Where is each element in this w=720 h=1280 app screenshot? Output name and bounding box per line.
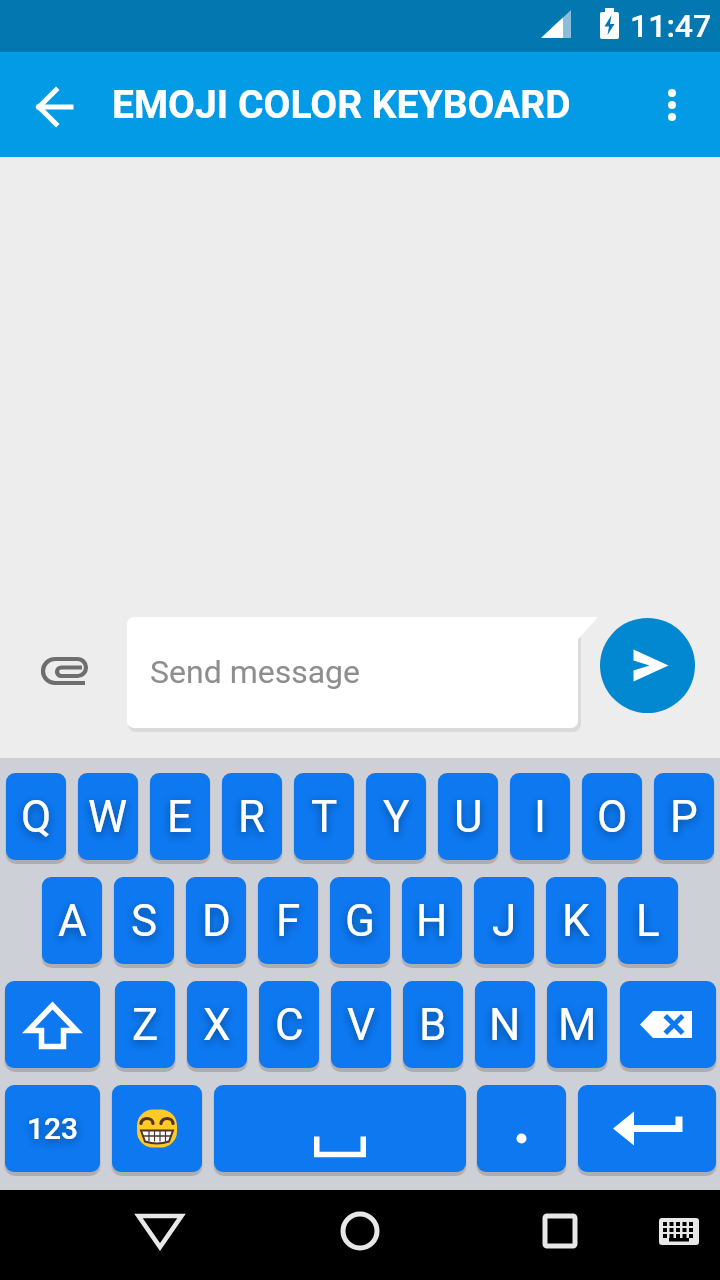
staticText: M xyxy=(558,999,597,1051)
button[interactable] xyxy=(600,618,695,713)
staticText: E xyxy=(167,791,193,843)
staticText: T xyxy=(311,791,338,843)
button[interactable]: D xyxy=(186,877,246,964)
button[interactable]: O xyxy=(582,773,642,860)
staticText: 11:47 xyxy=(630,7,712,45)
button[interactable]: R xyxy=(222,773,282,860)
button[interactable] xyxy=(477,1085,566,1172)
button[interactable] xyxy=(578,1085,716,1172)
button[interactable]: Send message xyxy=(127,616,580,728)
button[interactable]: S xyxy=(114,877,174,964)
button[interactable]: 123 xyxy=(5,1085,100,1172)
button[interactable]: U xyxy=(438,773,498,860)
staticText: 123 xyxy=(27,1111,79,1146)
button[interactable]: C xyxy=(259,981,319,1068)
button[interactable] xyxy=(5,981,100,1068)
button[interactable] xyxy=(112,1085,202,1172)
staticText: R xyxy=(238,791,266,843)
staticText: Q xyxy=(21,791,52,843)
button[interactable]: L xyxy=(618,877,678,964)
staticText: F xyxy=(276,895,301,947)
staticText: L xyxy=(636,895,660,947)
button[interactable] xyxy=(328,1203,392,1267)
staticText: J xyxy=(492,895,517,947)
button[interactable] xyxy=(650,1203,708,1261)
button[interactable] xyxy=(23,75,87,139)
button[interactable]: Y xyxy=(366,773,426,860)
button[interactable]: Q xyxy=(6,773,66,860)
staticText: Z xyxy=(132,999,159,1051)
staticText: Y xyxy=(383,791,410,843)
staticText: N xyxy=(489,999,521,1051)
button[interactable]: N xyxy=(475,981,535,1068)
button[interactable]: F xyxy=(258,877,318,964)
button[interactable]: W xyxy=(78,773,138,860)
button[interactable] xyxy=(528,1203,592,1267)
button[interactable]: X xyxy=(187,981,247,1068)
button[interactable]: E xyxy=(150,773,210,860)
button[interactable]: B xyxy=(403,981,463,1068)
staticText: X xyxy=(203,999,231,1051)
staticText: V xyxy=(347,999,376,1051)
button[interactable] xyxy=(648,81,696,129)
staticText: I xyxy=(534,791,546,843)
button[interactable]: V xyxy=(331,981,391,1068)
button[interactable]: G xyxy=(330,877,390,964)
staticText: O xyxy=(597,791,628,843)
button[interactable] xyxy=(33,641,93,701)
staticText: P xyxy=(670,791,698,843)
staticText: A xyxy=(58,895,87,947)
button[interactable]: J xyxy=(474,877,534,964)
staticText: G xyxy=(345,895,375,947)
staticText: C xyxy=(275,999,304,1051)
staticText: K xyxy=(562,895,590,947)
staticText: Send message xyxy=(150,653,361,691)
button[interactable]: A xyxy=(42,877,102,964)
staticText: EMOJI COLOR KEYBOARD xyxy=(112,82,571,128)
button[interactable] xyxy=(620,981,716,1068)
button[interactable] xyxy=(128,1203,192,1267)
button[interactable]: H xyxy=(402,877,462,964)
staticText: W xyxy=(88,791,128,843)
staticText: U xyxy=(454,791,483,843)
button[interactable] xyxy=(214,1085,466,1172)
button[interactable]: K xyxy=(546,877,606,964)
staticText: D xyxy=(202,895,231,947)
button[interactable]: M xyxy=(547,981,607,1068)
button[interactable]: Z xyxy=(115,981,175,1068)
staticText: S xyxy=(131,895,158,947)
staticText: H xyxy=(416,895,448,947)
button[interactable]: P xyxy=(654,773,714,860)
button[interactable]: I xyxy=(510,773,570,860)
button[interactable]: T xyxy=(294,773,354,860)
staticText: B xyxy=(419,999,447,1051)
